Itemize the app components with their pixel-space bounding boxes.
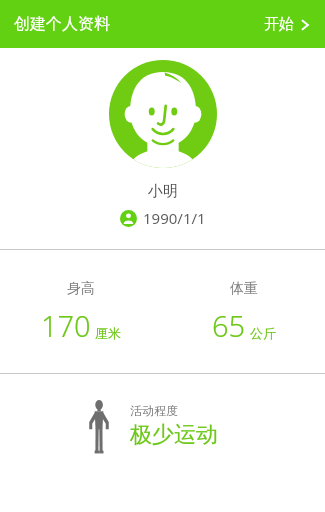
staticText: 厘米	[95, 325, 121, 341]
staticText: 身高	[67, 280, 95, 298]
staticText: 创建个人资料	[14, 14, 110, 34]
button[interactable]: 体重	[162, 278, 325, 347]
staticText: 体重	[230, 280, 258, 298]
staticText: 65	[212, 306, 246, 345]
staticText: 开始	[264, 15, 294, 34]
staticText: 170	[41, 306, 91, 345]
button[interactable]: Avatar	[109, 60, 217, 168]
button[interactable]: 小明	[148, 182, 178, 201]
staticText: 小明	[148, 182, 178, 201]
button[interactable]: 开始	[262, 11, 313, 38]
button[interactable]: 身高	[0, 278, 162, 347]
staticText: 极少运动	[130, 421, 218, 449]
staticText: 公斤	[250, 325, 276, 341]
button[interactable]: 创建个人资料	[14, 14, 110, 34]
button[interactable]: 活动程度	[0, 386, 325, 466]
button[interactable]: Gender	[120, 208, 206, 228]
other: Gender	[120, 210, 137, 227]
staticText: 1990/1/1	[143, 208, 206, 228]
staticText: 活动程度	[130, 403, 178, 418]
